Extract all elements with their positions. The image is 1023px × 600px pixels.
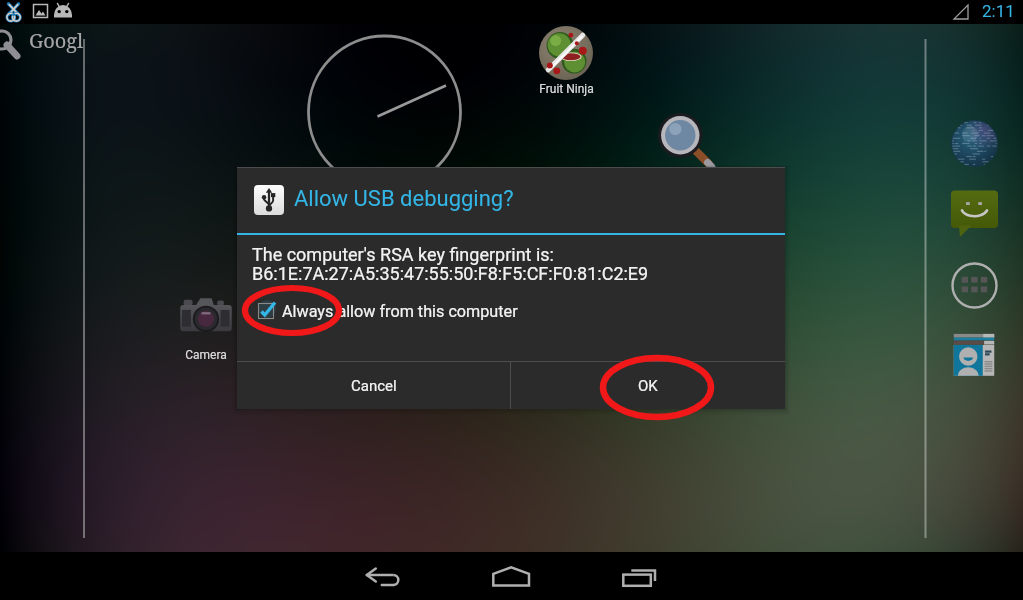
button[interactable]: OK xyxy=(511,362,785,409)
button[interactable]: Back xyxy=(356,552,410,600)
button[interactable]: Google search xyxy=(0,24,84,68)
button[interactable]: Fruit Ninja xyxy=(532,26,600,94)
staticText: The computer's RSA key fingerprint is: xyxy=(252,244,554,265)
button[interactable]: People xyxy=(951,333,997,379)
staticText: Allow USB debugging? xyxy=(294,186,514,212)
button[interactable]: Always allow from this computer xyxy=(252,297,518,325)
staticText: Camera xyxy=(185,348,227,362)
button[interactable]: Search xyxy=(653,108,715,170)
staticText: Always allow from this computer xyxy=(282,302,518,321)
staticText: B6:1E:7A:27:A5:35:47:55:50:F8:F5:CF:F0:8… xyxy=(252,263,649,284)
staticText: Google xyxy=(29,27,84,54)
staticText: Fruit Ninja xyxy=(539,82,594,96)
button[interactable]: Camera xyxy=(173,292,239,362)
button[interactable]: Recent apps xyxy=(612,552,666,600)
staticText: 2:11 xyxy=(982,1,1015,21)
staticText: OK xyxy=(638,377,658,395)
button[interactable]: Home xyxy=(484,552,538,600)
button[interactable]: Apps xyxy=(951,262,998,309)
staticText: Cancel xyxy=(351,377,397,395)
button[interactable]: Messaging xyxy=(951,189,998,236)
button[interactable]: Cancel xyxy=(237,362,510,409)
button[interactable]: Browser xyxy=(951,120,998,167)
